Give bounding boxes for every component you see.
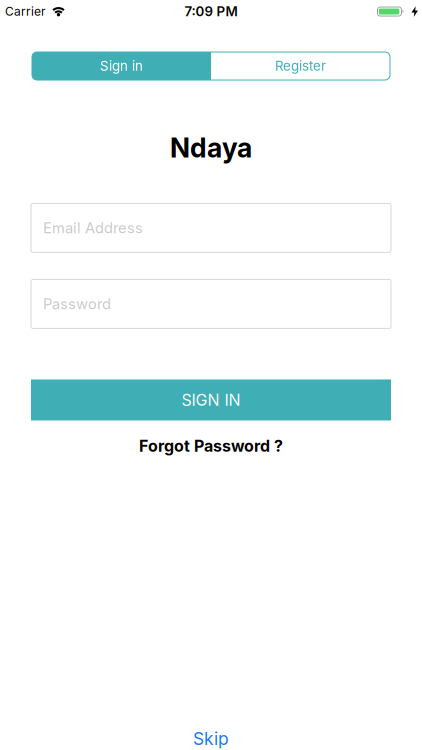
staticText: Email Address (43, 219, 143, 237)
staticText: 7:09 PM (184, 4, 237, 19)
staticText: Ndaya (170, 132, 252, 163)
staticText: Register (275, 58, 326, 74)
button[interactable]: Sign in (32, 52, 211, 80)
button[interactable]: Skip (193, 729, 229, 749)
button[interactable]: SIGN IN (31, 379, 391, 420)
staticText: Sign in (100, 58, 143, 74)
staticText: Skip (193, 729, 229, 749)
staticText: Carrier (5, 4, 46, 19)
staticText: SIGN IN (181, 390, 240, 409)
staticText: Password (43, 295, 111, 313)
staticText: Forgot Password ? (139, 436, 283, 455)
button[interactable]: Register (211, 52, 390, 80)
button[interactable]: Forgot Password ? (139, 436, 283, 455)
